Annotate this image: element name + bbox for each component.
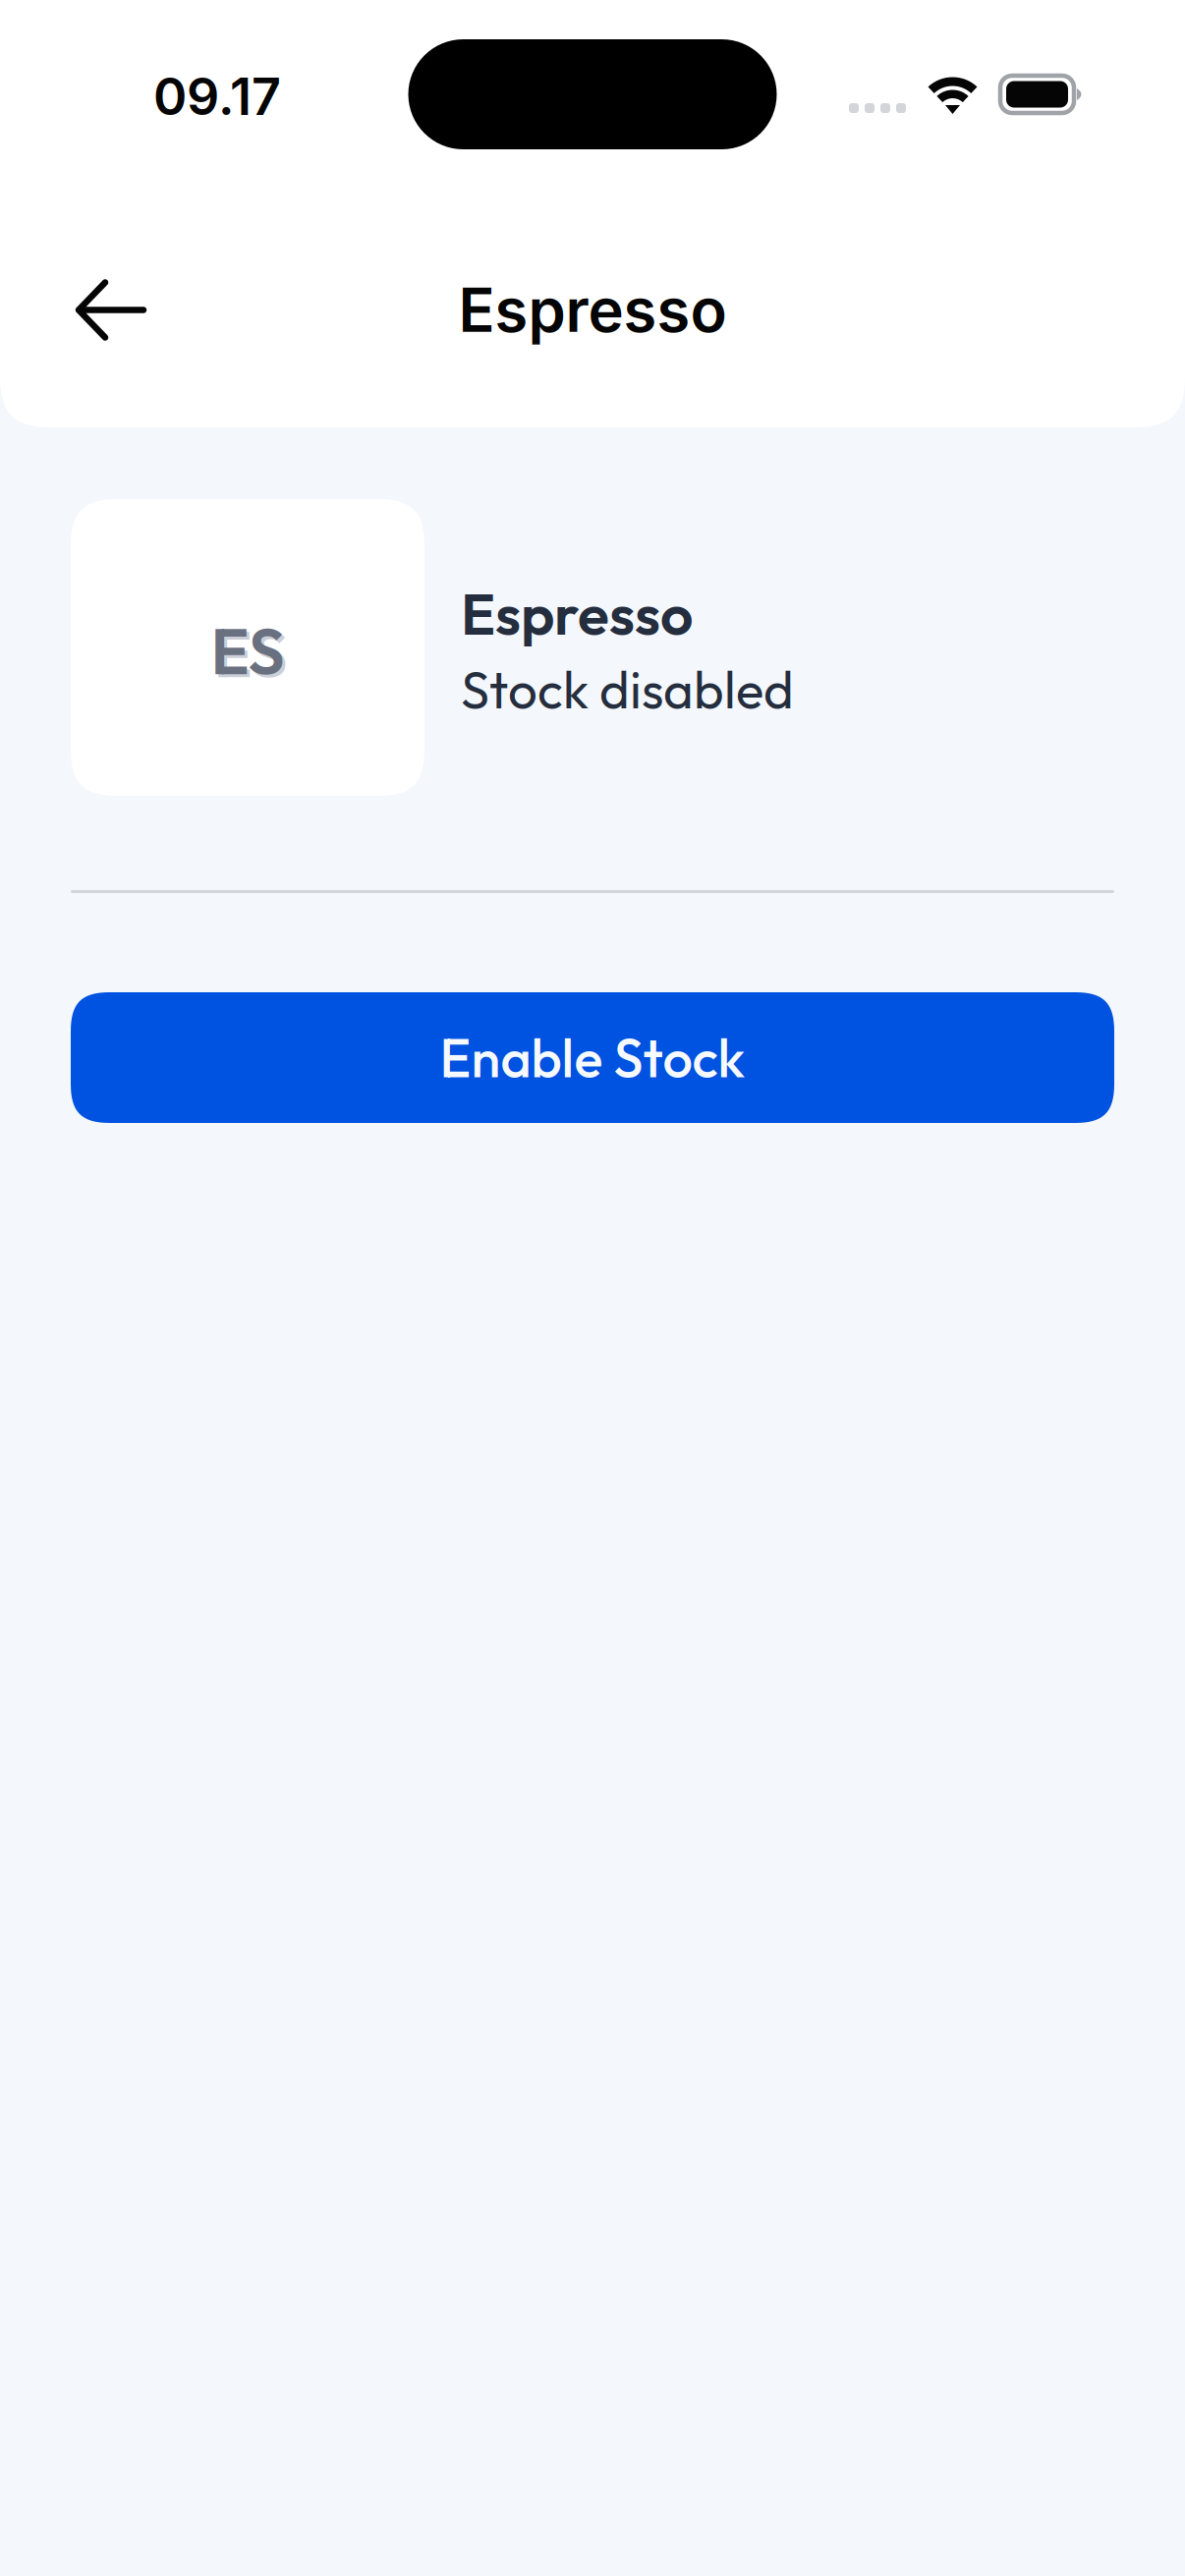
- staticText: ES: [211, 610, 284, 691]
- button[interactable]: Enable Stock: [71, 992, 1114, 1123]
- staticText: Espresso: [458, 274, 727, 346]
- staticText: Stock disabled: [461, 657, 794, 722]
- staticText: Espresso: [461, 577, 693, 650]
- button[interactable]: Back: [50, 243, 172, 377]
- staticText: 09.17: [153, 65, 281, 127]
- staticText: ES: [214, 613, 287, 694]
- staticText: Enable Stock: [440, 1024, 745, 1091]
